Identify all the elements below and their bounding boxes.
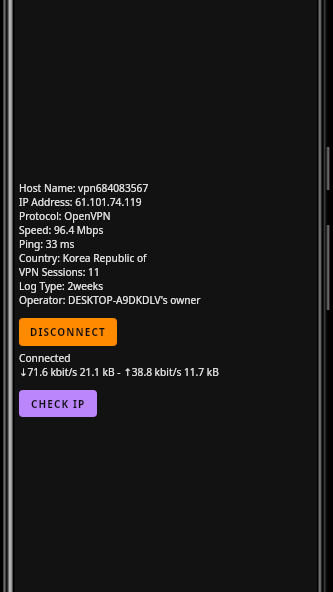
button[interactable]: DISCONNECT: [19, 318, 117, 346]
staticText: IP Address: 61.101.74.119: [19, 195, 142, 209]
staticText: ↓71.6 kbit/s 21.1 kB - ↑38.8 kbit/s 11.7…: [19, 365, 219, 378]
staticText: Country: Korea Republic of: [19, 251, 147, 265]
staticText: Operator: DESKTOP-A9DKDLV's owner: [19, 293, 201, 307]
other: Right edge of device with volume keys: [316, 0, 333, 592]
staticText: Host Name: vpn684083567: [19, 181, 149, 195]
staticText: Protocol: OpenVPN: [19, 209, 111, 223]
staticText: CHECK IP: [31, 397, 86, 411]
staticText: Ping: 33 ms: [19, 237, 75, 251]
staticText: Connected: [19, 351, 71, 365]
staticText: VPN Sessions: 11: [19, 265, 100, 279]
other: Left edge of device: [0, 0, 15, 592]
staticText: Log Type: 2weeks: [19, 279, 104, 293]
staticText: DISCONNECT: [30, 325, 106, 339]
staticText: Speed: 96.4 Mbps: [19, 223, 104, 237]
button[interactable]: CHECK IP: [19, 390, 97, 417]
